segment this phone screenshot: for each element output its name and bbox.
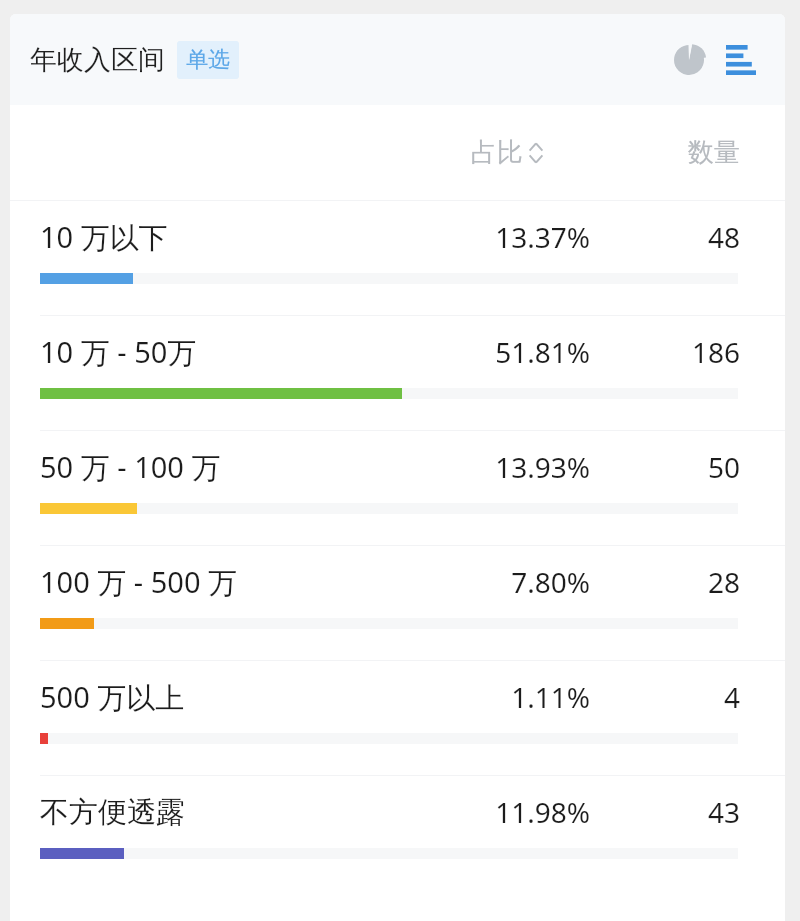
button[interactable]: 占比 <box>471 136 544 169</box>
button[interactable]: 不方便透露 <box>10 776 785 890</box>
staticText: 186 <box>691 333 740 371</box>
staticText: 28 <box>707 563 740 601</box>
staticText: 数量 <box>688 136 740 169</box>
staticText: 50 万 - 100 万 <box>40 447 221 487</box>
staticText: 50 <box>707 448 740 486</box>
button[interactable]: 500 万以上 <box>10 661 785 775</box>
staticText: 年收入区间 <box>30 43 165 77</box>
staticText: 4 <box>723 678 740 716</box>
staticText: 13.93% <box>495 448 590 486</box>
staticText: 7.80% <box>511 563 590 601</box>
button[interactable]: 单选 <box>177 41 239 79</box>
staticText: 11.98% <box>495 793 590 831</box>
staticText: 51.81% <box>495 333 590 371</box>
button[interactable]: 100 万 - 500 万 <box>10 546 785 660</box>
staticText: 43 <box>707 793 740 831</box>
staticText: 48 <box>707 218 740 256</box>
staticText: 单选 <box>186 46 230 74</box>
staticText: 500 万以上 <box>40 677 185 717</box>
staticText: 不方便透露 <box>40 794 185 831</box>
button[interactable]: Pie chart view <box>667 38 711 82</box>
staticText: 1.11% <box>511 678 590 716</box>
button[interactable]: 10 万 - 50万 <box>10 316 785 430</box>
staticText: 占比 <box>471 136 523 169</box>
button[interactable]: Bar chart view <box>719 38 763 82</box>
button[interactable]: 50 万 - 100 万 <box>10 431 785 545</box>
button[interactable]: 10 万以下 <box>10 201 785 315</box>
staticText: 100 万 - 500 万 <box>40 562 238 602</box>
staticText: 10 万 - 50万 <box>40 332 197 372</box>
staticText: 13.37% <box>495 218 590 256</box>
staticText: 10 万以下 <box>40 217 168 257</box>
